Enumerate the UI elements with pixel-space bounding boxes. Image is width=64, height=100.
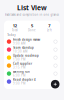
button[interactable]: Add task — [51, 80, 59, 88]
staticText: 9:00 PM — [13, 82, 25, 85]
staticText: 7 — [48, 23, 50, 28]
staticText: Evening run — [13, 70, 30, 73]
button[interactable]: Finish design review — [4, 38, 60, 46]
staticText: Total — [12, 28, 18, 32]
button[interactable]: Evening run — [4, 70, 60, 78]
staticText: 10:30 AM — [13, 50, 27, 53]
staticText: 3:15 PM — [13, 66, 25, 69]
staticText: 5 — [31, 23, 33, 28]
staticText: 1:00 PM — [13, 58, 25, 61]
button[interactable]: Team standup — [4, 46, 60, 54]
staticText: Read chapter 4 — [13, 78, 36, 81]
button[interactable]: Call supplier — [4, 62, 60, 70]
staticText: Track tasks and completion in one glance — [4, 13, 59, 17]
staticText: List View — [17, 3, 47, 12]
staticText: 6:00 PM — [13, 74, 25, 77]
staticText: Update roadmap — [13, 54, 39, 57]
staticText: 12 — [13, 23, 17, 28]
staticText: Call supplier — [13, 62, 32, 65]
staticText: Finish design review — [13, 38, 40, 41]
staticText: Left — [47, 28, 52, 32]
button[interactable]: Update roadmap — [4, 54, 60, 62]
staticText: 9:00 AM — [13, 42, 25, 45]
staticText: Done — [28, 28, 36, 32]
button[interactable]: Read chapter 4 — [4, 78, 60, 86]
staticText: Team standup — [13, 46, 34, 49]
staticText: Today — [7, 33, 15, 37]
